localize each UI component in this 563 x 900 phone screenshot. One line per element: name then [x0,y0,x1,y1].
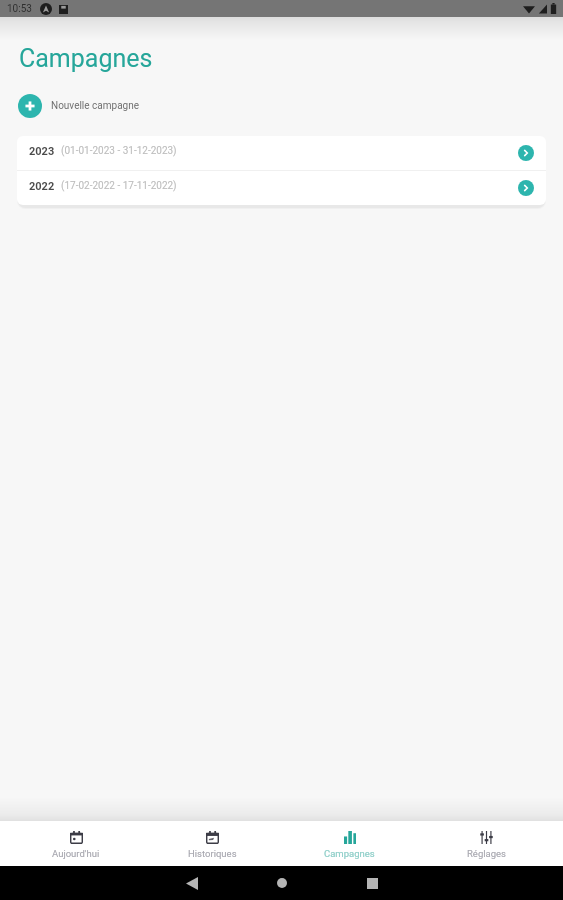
button[interactable]: 2023 [17,136,546,170]
staticText: 2023 [29,145,55,158]
button[interactable]: Back [175,866,209,900]
button[interactable]: Réglages [418,821,555,866]
staticText: (17-02-2022 - 17-11-2022) [61,180,177,192]
staticText: Campagnes [324,848,375,859]
staticText: 2022 [29,180,55,193]
staticText: Historiques [188,848,237,859]
button[interactable]: Campagnes [281,821,418,866]
button[interactable]: Open campaign 2022 [518,180,534,196]
staticText: Nouvelle campagne [51,100,140,112]
staticText: Campagnes [19,44,153,73]
staticText: 10:53 [7,3,32,15]
staticText: Réglages [467,848,506,859]
button[interactable]: Aujourd'hui [8,821,144,866]
button[interactable]: Home [265,866,299,900]
button[interactable]: Nouvelle campagne [18,94,140,118]
button[interactable]: Recent apps [355,866,389,900]
staticText: (01-01-2023 - 31-12-2023) [61,145,177,157]
button[interactable]: 2022 [17,171,546,205]
button[interactable]: Open campaign 2023 [518,145,534,161]
staticText: Aujourd'hui [52,848,100,859]
button[interactable]: Historiques [144,821,281,866]
